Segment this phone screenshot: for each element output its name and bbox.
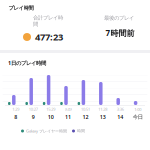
staticText: 10 (48, 113, 54, 120)
staticText: 3:36 (117, 107, 124, 112)
button[interactable]: プレイ時間 (8, 5, 33, 11)
staticText: 14 (117, 113, 123, 120)
staticText: 13 (100, 113, 106, 120)
staticText: 9 (32, 113, 35, 120)
staticText: 1日のプレイ時間 (8, 59, 46, 67)
staticText: 1:29 (12, 107, 19, 112)
staticText: 時間 (77, 128, 85, 133)
staticText: 15:29 (46, 107, 55, 112)
staticText: 9:49 (64, 107, 71, 112)
staticText: 合計プレイ時間 (33, 14, 63, 27)
staticText: 最後のプレイ (104, 15, 134, 21)
staticText: 12 (82, 113, 88, 120)
staticText: 7時間前 (105, 28, 134, 38)
staticText: 1:00 (134, 107, 141, 112)
staticText: プレイ時間 (8, 5, 33, 11)
staticText: 11:28 (98, 107, 107, 112)
staticText: 10:27 (29, 107, 38, 112)
staticText: 11 (65, 113, 71, 120)
staticText: 8 (14, 113, 17, 120)
staticText: 今日 (133, 114, 143, 120)
staticText: Galaxy プレイヤー時間 (26, 128, 67, 134)
staticText: 10:51 (81, 107, 90, 112)
staticText: 477:23 (35, 31, 63, 43)
